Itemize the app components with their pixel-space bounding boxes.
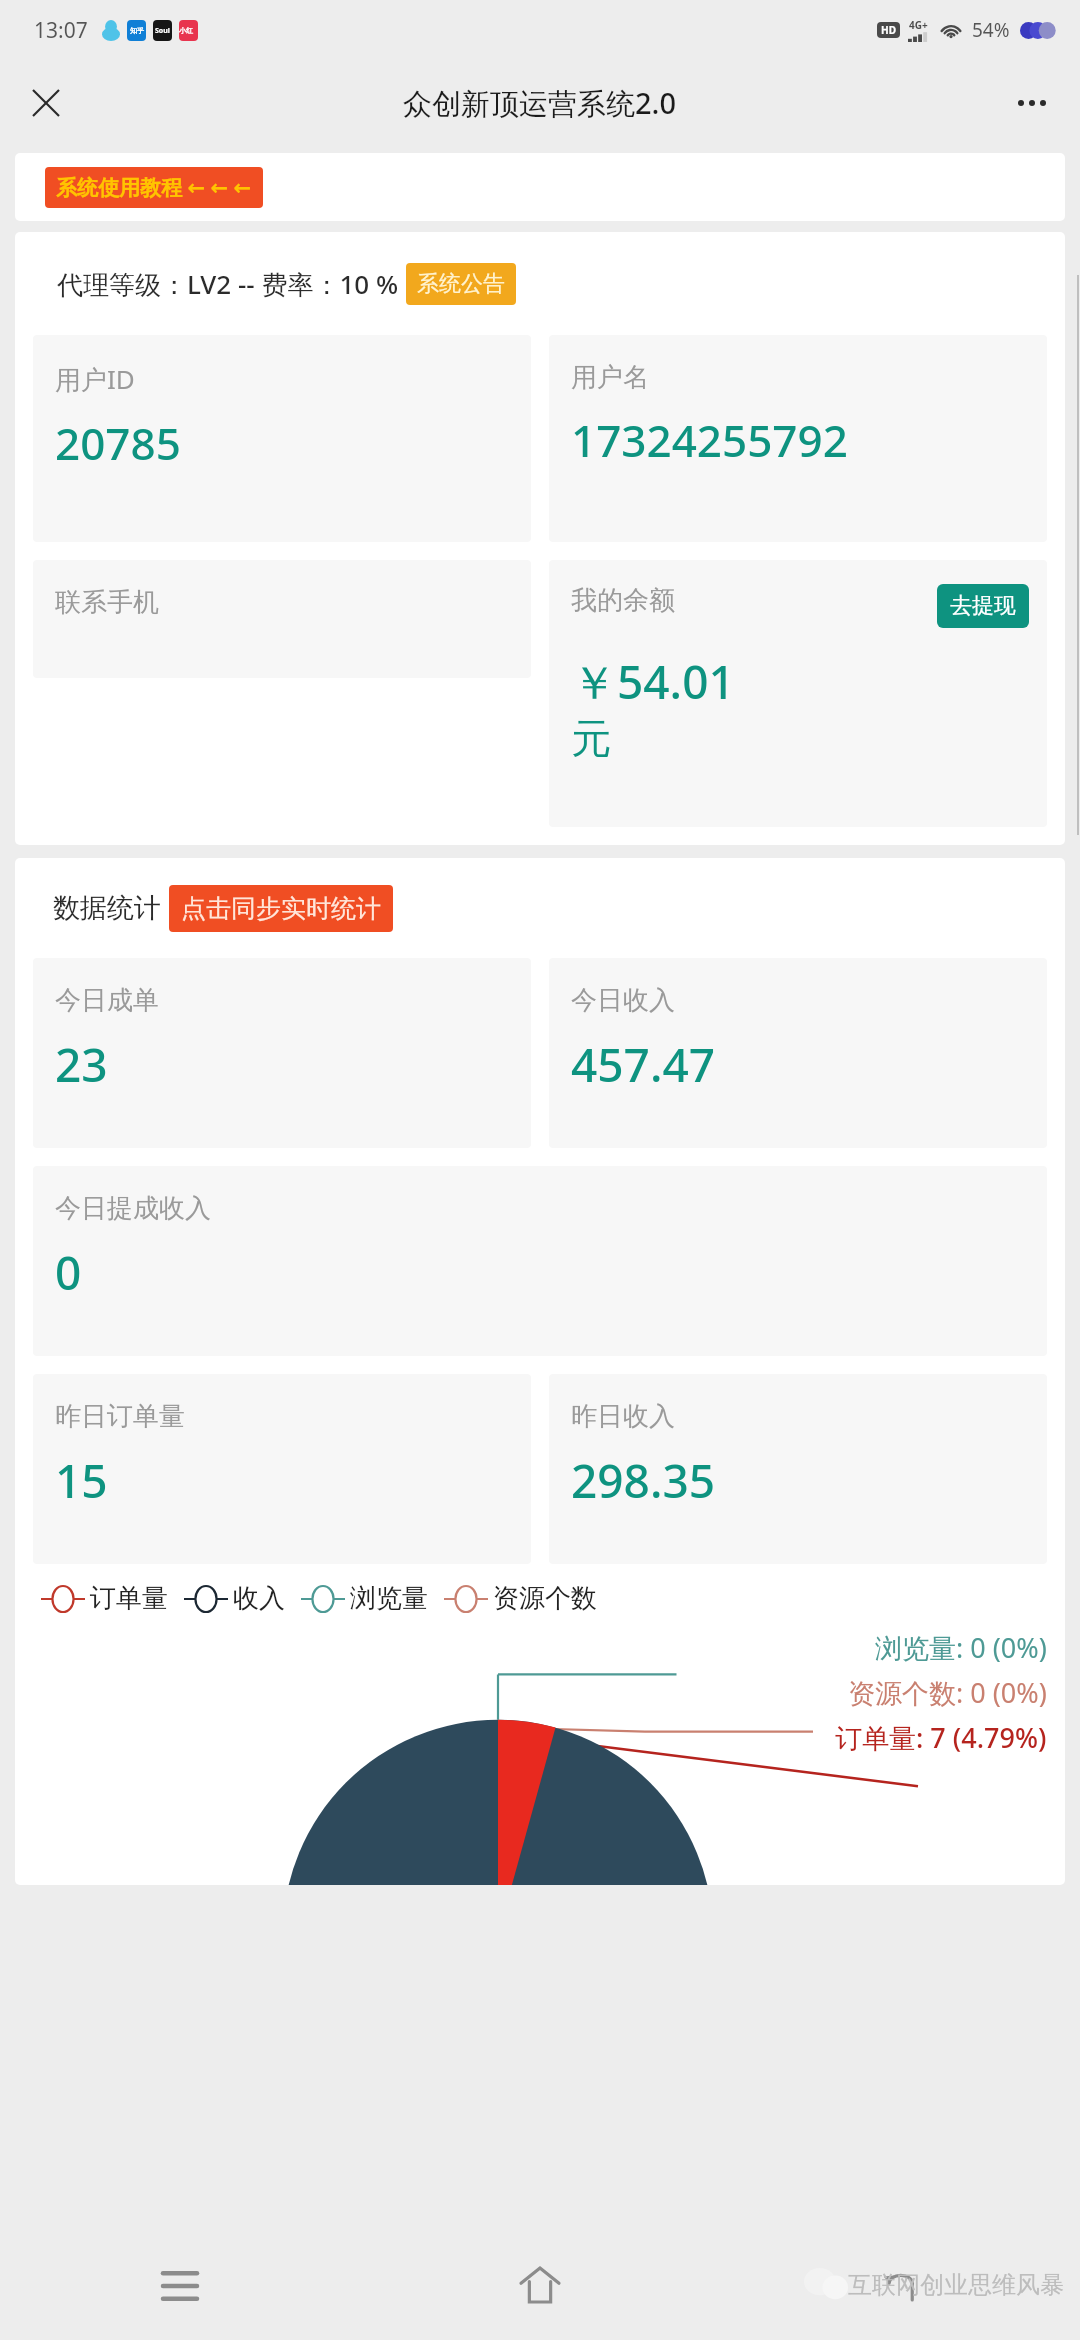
- staticText: 资源个数: 0 (0%): [848, 1674, 1047, 1711]
- staticText: 数据统计: [53, 891, 161, 925]
- staticText: 今日成单: [55, 984, 159, 1017]
- button[interactable]: 点击同步实时统计: [169, 885, 393, 932]
- button[interactable]: 昨日订单量: [33, 1374, 531, 1564]
- button[interactable]: 收入: [184, 1582, 285, 1615]
- staticText: 298.35: [571, 1449, 716, 1512]
- staticText: 联系手机: [55, 586, 159, 619]
- staticText: 13:07: [34, 16, 88, 45]
- staticText: 浏览量: 0 (0%): [875, 1629, 1047, 1666]
- staticText: 点击同步实时统计: [181, 893, 381, 924]
- staticText: Soul: [155, 26, 170, 36]
- button[interactable]: Recent apps: [0, 2230, 360, 2340]
- staticText: 订单量: [90, 1582, 168, 1615]
- button[interactable]: Home: [360, 2230, 720, 2340]
- staticText: 小红书: [179, 26, 198, 35]
- staticText: 昨日收入: [571, 1400, 675, 1433]
- button[interactable]: 去提现: [937, 584, 1029, 628]
- button[interactable]: 我的余额: [549, 560, 1047, 827]
- staticText: 资源个数: [493, 1582, 597, 1615]
- staticText: 23: [55, 1033, 108, 1096]
- button[interactable]: 用户名: [549, 335, 1047, 542]
- staticText: 457.47: [571, 1033, 716, 1096]
- button[interactable]: More options: [1004, 75, 1060, 131]
- staticText: 17324255792: [571, 410, 848, 470]
- staticText: 20785: [55, 413, 181, 473]
- staticText: 0: [55, 1241, 82, 1304]
- staticText: 用户名: [571, 361, 649, 394]
- button[interactable]: 浏览量: [301, 1582, 428, 1615]
- button[interactable]: 今日收入: [549, 958, 1047, 1148]
- button[interactable]: 用户ID: [33, 335, 531, 542]
- staticText: 互联网创业思维风暴: [848, 2270, 1064, 2300]
- staticText: 昨日订单量: [55, 1400, 185, 1433]
- staticText: 众创新顶运营系统2.0: [403, 83, 677, 123]
- staticText: 去提现: [950, 592, 1016, 620]
- button[interactable]: 昨日收入: [549, 1374, 1047, 1564]
- button[interactable]: 订单量: [41, 1582, 168, 1615]
- button[interactable]: Back: [720, 2230, 1080, 2340]
- staticText: 我的余额: [571, 584, 675, 617]
- staticText: 4G+: [909, 18, 928, 32]
- staticText: 15: [55, 1449, 108, 1512]
- staticText: 元: [571, 713, 611, 763]
- staticText: 今日收入: [571, 984, 675, 1017]
- staticText: 收入: [233, 1582, 285, 1615]
- button[interactable]: 资源个数: [444, 1582, 597, 1615]
- button[interactable]: 联系手机: [33, 560, 531, 678]
- button[interactable]: 今日成单: [33, 958, 531, 1148]
- staticText: 知乎: [130, 26, 144, 35]
- staticText: 54%: [972, 17, 1010, 43]
- staticText: HD: [881, 23, 896, 37]
- staticText: 订单量: 7 (4.79%): [835, 1719, 1047, 1756]
- button[interactable]: Close: [18, 75, 74, 131]
- button[interactable]: 今日提成收入: [33, 1166, 1047, 1356]
- staticText: 系统使用教程 ← ← ←: [56, 173, 252, 202]
- button[interactable]: 系统公告: [406, 263, 516, 305]
- staticText: 今日提成收入: [55, 1192, 211, 1225]
- staticText: 用户ID: [55, 361, 135, 397]
- staticText: 代理等级：LV2 -- 费率：10 %: [57, 266, 399, 302]
- button[interactable]: 系统使用教程 ← ← ←: [45, 167, 263, 208]
- staticText: 系统公告: [417, 270, 505, 298]
- staticText: 浏览量: [350, 1582, 428, 1615]
- staticText: ￥54.01: [571, 650, 735, 713]
